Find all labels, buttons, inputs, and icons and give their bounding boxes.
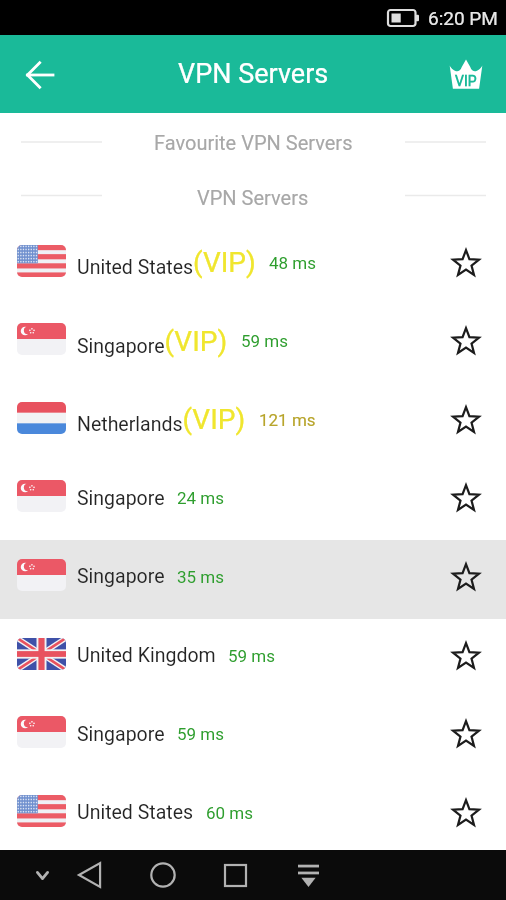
staticText: Singapore(VIP) [77, 325, 228, 358]
button[interactable]: Add to favourites [445, 320, 487, 362]
staticText: VIP [455, 73, 477, 89]
button[interactable]: Add to favourites [445, 477, 487, 519]
button[interactable]: Add to favourites [445, 399, 487, 441]
staticText: Singapore [77, 487, 165, 510]
staticText: 60 ms [206, 803, 254, 823]
staticText: 24 ms [177, 488, 225, 508]
button[interactable]: Back [17, 52, 63, 98]
staticText: 48 ms [269, 253, 317, 273]
button[interactable]: United Kingdom [0, 619, 506, 698]
button[interactable]: Add to favourites [445, 556, 487, 598]
staticText: Netherlands(VIP) [77, 403, 246, 436]
button[interactable]: Singapore [0, 462, 506, 540]
button[interactable]: Netherlands(VIP) [0, 383, 506, 462]
button[interactable]: United States(VIP) [0, 226, 506, 305]
staticText: 6:20 PM [428, 7, 498, 29]
staticText: United Kingdom [77, 644, 216, 667]
button[interactable]: Home [141, 853, 185, 897]
button[interactable]: Add to favourites [445, 635, 487, 677]
button[interactable]: Hide keyboard [24, 857, 60, 893]
button[interactable]: VIP membership [442, 50, 490, 98]
staticText: VPN Servers [178, 58, 329, 90]
staticText: 59 ms [241, 331, 289, 351]
button[interactable]: Singapore [0, 698, 506, 776]
button[interactable]: Back [68, 853, 112, 897]
staticText: 59 ms [228, 646, 276, 666]
button[interactable]: Add to favourites [445, 242, 487, 284]
button[interactable]: Add to favourites [445, 713, 487, 755]
staticText: United States [77, 801, 194, 824]
staticText: VPN Servers [197, 186, 309, 209]
staticText: Singapore [77, 723, 165, 746]
button[interactable]: Add to favourites [445, 792, 487, 834]
staticText: 35 ms [177, 567, 225, 587]
button[interactable]: United States [0, 776, 506, 855]
button[interactable]: Recent apps [213, 853, 257, 897]
button[interactable]: Singapore(VIP) [0, 305, 506, 383]
button[interactable]: Notifications [286, 853, 330, 897]
staticText: 121 ms [259, 410, 316, 430]
staticText: Favourite VPN Servers [154, 131, 353, 154]
staticText: 59 ms [177, 724, 225, 744]
staticText: United States(VIP) [77, 246, 256, 279]
button[interactable]: Singapore [0, 540, 506, 619]
staticText: Singapore [77, 565, 165, 588]
